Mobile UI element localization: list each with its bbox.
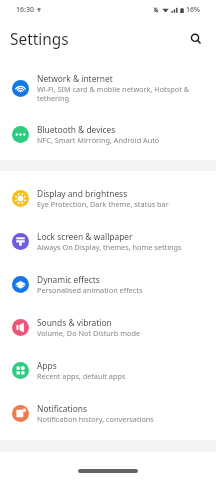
button[interactable]: Notifications: [0, 392, 216, 435]
staticText: Always On Display, themes, home settings: [37, 242, 182, 252]
staticText: Sounds & vibration: [37, 317, 112, 328]
staticText: Apps: [37, 360, 57, 371]
staticText: Recent apps, default apps: [37, 371, 126, 381]
staticText: Notifications: [37, 403, 87, 414]
button[interactable]: Bluetooth & devices: [0, 112, 216, 156]
staticText: Dynamic effects: [37, 274, 100, 285]
button[interactable]: Lock screen & wallpaper: [0, 220, 216, 263]
staticText: Network & internet: [37, 73, 113, 84]
staticText: 16%: [186, 5, 200, 15]
button[interactable]: Display and brightness: [0, 177, 216, 220]
button[interactable]: Dynamic effects: [0, 263, 216, 306]
staticText: Settings: [10, 29, 69, 50]
button[interactable]: Apps: [0, 349, 216, 392]
staticText: Eye Protection, Dark theme, status bar: [37, 199, 169, 209]
staticText: Wi-Fi, SIM card & mobile network, Hotspo…: [37, 84, 208, 104]
button[interactable]: Network & internet: [0, 65, 216, 112]
staticText: 16:30: [16, 5, 34, 15]
staticText: Bluetooth & devices: [37, 124, 116, 135]
staticText: Lock screen & wallpaper: [37, 231, 133, 242]
staticText: Display and brightness: [37, 188, 128, 199]
button[interactable]: Sounds & vibration: [0, 306, 216, 349]
staticText: Notification history, conversations: [37, 414, 154, 424]
staticText: NFC, Smart Mirroring, Android Auto: [37, 135, 160, 145]
button[interactable]: Search: [186, 29, 206, 49]
staticText: Volume, Do Not Disturb mode: [37, 328, 141, 338]
staticText: Personalised animation effects: [37, 285, 143, 295]
